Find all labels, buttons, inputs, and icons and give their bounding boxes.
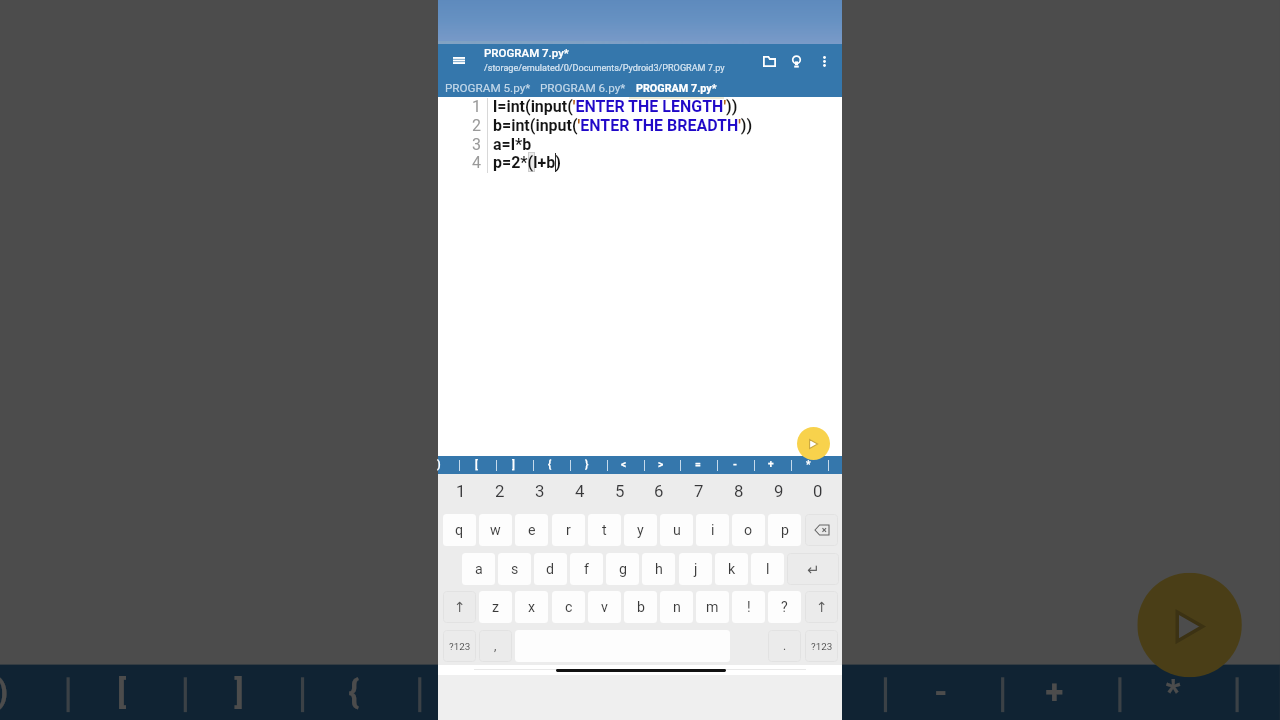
- staticText: ): [437, 459, 441, 471]
- button[interactable]: [: [63, 665, 177, 720]
- button[interactable]: s: [498, 553, 531, 585]
- button[interactable]: ]: [181, 665, 295, 720]
- staticText: 4: [575, 481, 585, 501]
- button[interactable]: p: [768, 514, 801, 546]
- button[interactable]: v: [588, 591, 621, 623]
- staticText: *: [806, 459, 811, 471]
- button[interactable]: PROGRAM 7.py*: [629, 79, 724, 97]
- button[interactable]: ,: [479, 630, 512, 662]
- staticText: d: [546, 561, 555, 578]
- staticText: 4: [472, 153, 481, 172]
- staticText: ↑: [816, 599, 828, 615]
- staticText: +: [768, 459, 774, 471]
- button[interactable]: {: [532, 456, 568, 474]
- staticText: t: [602, 522, 607, 539]
- button[interactable]: -: [884, 665, 998, 720]
- button[interactable]: ): [0, 665, 60, 720]
- button[interactable]: d: [534, 553, 567, 585]
- button[interactable]: =: [680, 456, 716, 474]
- button[interactable]: o: [732, 514, 765, 546]
- button[interactable]: Symbols: [443, 630, 476, 662]
- staticText: 3: [472, 135, 481, 154]
- button[interactable]: j: [679, 553, 712, 585]
- button[interactable]: m: [696, 591, 729, 623]
- button[interactable]: {: [298, 665, 412, 720]
- button[interactable]: Symbols: [805, 630, 838, 662]
- button[interactable]: w: [479, 514, 512, 546]
- button[interactable]: r: [552, 514, 585, 546]
- button[interactable]: >: [649, 665, 763, 720]
- button[interactable]: =: [767, 665, 881, 720]
- button[interactable]: Open navigation drawer: [439, 43, 479, 78]
- button[interactable]: PROGRAM 5.py*: [440, 79, 535, 97]
- staticText: 0: [813, 481, 823, 501]
- button[interactable]: >: [643, 456, 679, 474]
- button[interactable]: a: [462, 553, 495, 585]
- button[interactable]: 0: [799, 478, 837, 504]
- button[interactable]: -: [717, 456, 753, 474]
- staticText: j: [694, 561, 698, 578]
- button[interactable]: 9: [760, 478, 798, 504]
- button[interactable]: 5: [601, 478, 639, 504]
- button[interactable]: 4: [561, 478, 599, 504]
- staticText: ↵: [807, 561, 820, 578]
- button[interactable]: q: [443, 514, 476, 546]
- button[interactable]: }: [569, 456, 605, 474]
- button[interactable]: y: [624, 514, 657, 546]
- button[interactable]: i: [696, 514, 729, 546]
- button[interactable]: ]: [495, 456, 531, 474]
- button[interactable]: 1: [442, 478, 480, 504]
- button[interactable]: <: [606, 456, 642, 474]
- button[interactable]: [: [458, 456, 494, 474]
- button[interactable]: e: [515, 514, 548, 546]
- button[interactable]: c: [552, 591, 585, 623]
- button[interactable]: .: [768, 630, 801, 662]
- button[interactable]: <: [532, 665, 646, 720]
- button[interactable]: Shift: [443, 591, 476, 623]
- button[interactable]: +: [998, 665, 1112, 720]
- button[interactable]: 2: [481, 478, 519, 504]
- button[interactable]: *: [790, 456, 826, 474]
- button[interactable]: 3: [521, 478, 559, 504]
- button[interactable]: t: [588, 514, 621, 546]
- button[interactable]: *: [1115, 665, 1229, 720]
- button[interactable]: ?: [768, 591, 801, 623]
- staticText: 5: [615, 481, 625, 501]
- button[interactable]: k: [715, 553, 748, 585]
- button[interactable]: n: [660, 591, 693, 623]
- button[interactable]: !: [732, 591, 765, 623]
- button[interactable]: 7: [680, 478, 718, 504]
- button[interactable]: g: [606, 553, 639, 585]
- button[interactable]: h: [642, 553, 675, 585]
- staticText: {: [348, 674, 361, 712]
- button[interactable]: Hints: [783, 44, 810, 79]
- button[interactable]: 8: [720, 478, 758, 504]
- staticText: v: [601, 599, 608, 616]
- button[interactable]: +: [753, 456, 789, 474]
- button[interactable]: 6: [640, 478, 678, 504]
- staticText: {: [548, 459, 552, 471]
- staticText: 3: [535, 481, 545, 501]
- button[interactable]: z: [479, 591, 512, 623]
- button[interactable]: x: [515, 591, 548, 623]
- staticText: +: [1045, 674, 1064, 712]
- staticText: l: [766, 561, 770, 578]
- button[interactable]: Open file: [756, 44, 783, 79]
- staticText: PROGRAM 7.py*: [636, 82, 717, 95]
- button[interactable]: b: [624, 591, 657, 623]
- button[interactable]: Backspace: [805, 514, 838, 546]
- button[interactable]: }: [415, 665, 529, 720]
- button[interactable]: u: [660, 514, 693, 546]
- button[interactable]: Run program: [1137, 573, 1242, 677]
- button[interactable]: PROGRAM 6.py*: [535, 79, 630, 97]
- button[interactable]: ): [421, 456, 457, 474]
- staticText: o: [744, 522, 753, 539]
- button[interactable]: More options: [812, 44, 836, 79]
- button[interactable]: Enter: [787, 553, 839, 585]
- button[interactable]: l: [751, 553, 784, 585]
- button[interactable]: Shift: [805, 591, 838, 623]
- staticText: p=2*(l+b): [493, 153, 561, 172]
- button[interactable]: Run program: [797, 427, 830, 460]
- button[interactable]: f: [570, 553, 603, 585]
